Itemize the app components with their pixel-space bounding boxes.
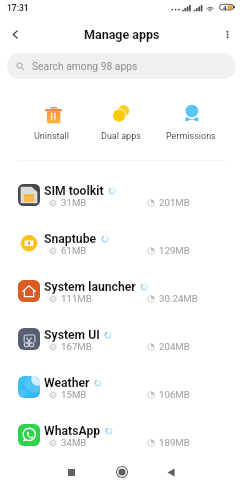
button[interactable]: Dual apps (86, 104, 156, 142)
button[interactable]: Back (0, 19, 31, 50)
staticText: System launcher (44, 280, 136, 294)
staticText: 189MB (159, 437, 190, 448)
staticText: 31MB (61, 197, 87, 208)
button[interactable]: WhatsApp (0, 411, 243, 459)
staticText: 204MB (159, 341, 190, 352)
staticText: Snaptube (44, 232, 97, 246)
staticText: Uninstall (34, 131, 69, 142)
button[interactable]: Home (108, 458, 136, 486)
staticText: Dual apps (101, 131, 141, 142)
staticText: Search among 98 apps (32, 60, 138, 72)
button[interactable]: Weather (0, 363, 243, 411)
button[interactable]: Search among 98 apps (7, 53, 236, 79)
staticText: Weather (44, 376, 90, 390)
staticText: System UI (44, 328, 100, 342)
button[interactable]: Recent apps (57, 458, 85, 486)
button[interactable]: More options (212, 19, 243, 50)
staticText: Manage apps (84, 27, 160, 42)
button[interactable]: Permissions (156, 104, 226, 142)
button[interactable]: System UI (0, 315, 243, 363)
staticText: Permissions (166, 131, 216, 142)
staticText: 106MB (159, 389, 190, 400)
staticText: SIM toolkit (44, 184, 104, 198)
staticText: 4 (223, 4, 227, 11)
staticText: 30.24MB (159, 293, 198, 304)
staticText: 111MB (61, 293, 92, 304)
button[interactable]: Uninstall (17, 104, 86, 142)
staticText: 17:31 (7, 3, 29, 13)
button[interactable]: Back (157, 458, 185, 486)
button[interactable]: SIM toolkit (0, 171, 243, 219)
button[interactable]: Snaptube (0, 219, 243, 267)
staticText: 61MB (61, 245, 87, 256)
staticText: 167MB (61, 341, 92, 352)
staticText: WhatsApp (44, 424, 101, 438)
button[interactable]: System launcher (0, 267, 243, 315)
staticText: 34MB (61, 437, 87, 448)
staticText: 15MB (61, 389, 87, 400)
staticText: 201MB (159, 197, 190, 208)
staticText: 129MB (159, 245, 190, 256)
